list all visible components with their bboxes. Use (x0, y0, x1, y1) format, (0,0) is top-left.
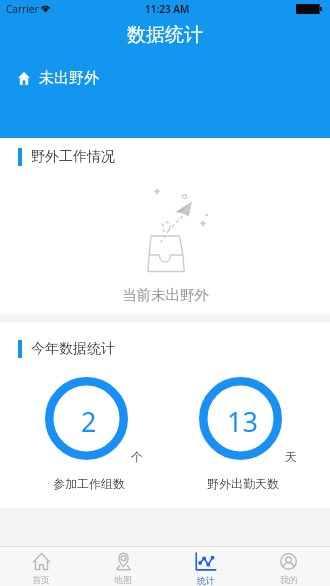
staticText: 当前未出野外 (122, 286, 209, 304)
staticText: Carrier (6, 2, 39, 16)
staticText: 天 (285, 449, 297, 463)
staticText: 个 (131, 449, 143, 463)
staticText: 今年数据统计 (31, 340, 115, 358)
staticText: 数据统计 (127, 23, 203, 47)
button[interactable]: 首页 (0, 547, 82, 586)
staticText: 地图 (114, 574, 132, 585)
button[interactable]: 未出野外 (18, 69, 99, 88)
staticText: 野外出勤天数 (207, 476, 279, 491)
button[interactable]: 统计 (164, 547, 247, 586)
staticText: 首页 (32, 574, 50, 585)
staticText: 我的 (280, 574, 298, 585)
button[interactable]: 我的 (247, 547, 330, 586)
staticText: 2 (81, 403, 97, 440)
staticText: 野外工作情况 (31, 148, 115, 166)
button[interactable]: 地图 (82, 547, 164, 586)
staticText: 13 (227, 403, 258, 440)
staticText: 统计 (197, 575, 215, 586)
staticText: 未出野外 (39, 69, 99, 88)
staticText: 参加工作组数 (53, 476, 125, 491)
staticText: 11:23 AM (145, 2, 190, 16)
